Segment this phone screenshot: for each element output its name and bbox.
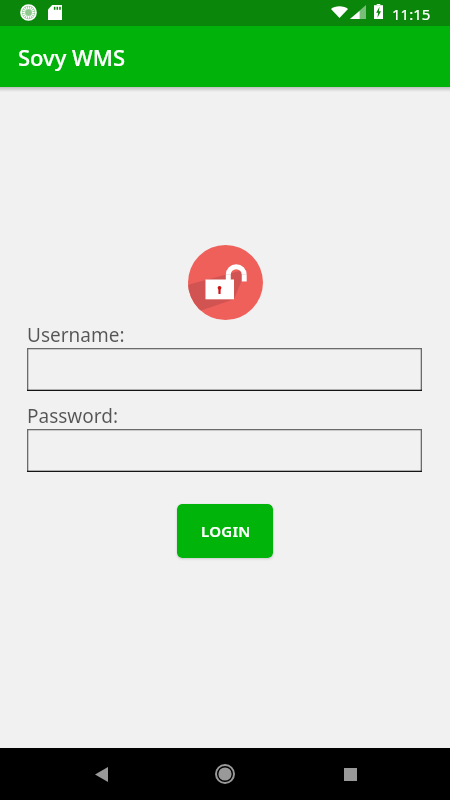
staticText: Username:	[27, 322, 125, 348]
button[interactable]: Password input field	[27, 429, 422, 472]
button[interactable]: Home	[201, 750, 249, 798]
button[interactable]: Recent apps	[326, 750, 374, 798]
staticText: Sovy WMS	[18, 42, 126, 72]
staticText: LOGIN	[201, 521, 251, 541]
button[interactable]: Back	[77, 750, 125, 798]
staticText: 11:15	[392, 4, 431, 24]
button[interactable]: LOGIN	[177, 504, 273, 558]
button[interactable]: Username input field	[27, 348, 422, 391]
staticText: Password:	[27, 403, 119, 429]
